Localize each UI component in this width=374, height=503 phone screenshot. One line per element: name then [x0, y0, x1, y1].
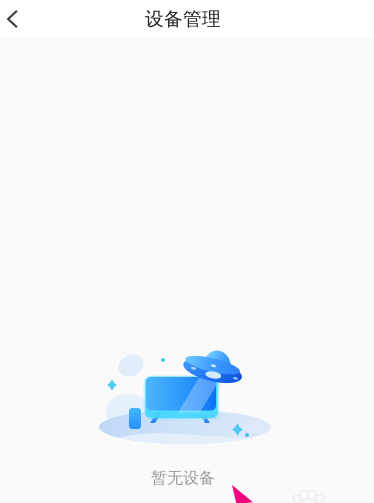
button[interactable]: 返回 — [0, 0, 28, 38]
staticText: 设备管理 — [145, 7, 221, 30]
staticText: 暂无设备 — [151, 468, 215, 488]
